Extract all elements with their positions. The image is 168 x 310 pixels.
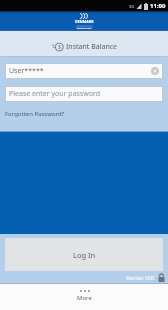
button[interactable]: $ <box>0 31 168 57</box>
staticText: Member FDIC <box>126 275 156 281</box>
staticText: DENMARK <box>75 19 94 24</box>
staticText: STATE BANK <box>77 26 92 29</box>
staticText: More <box>77 294 92 302</box>
staticText: Instant Balance <box>66 42 118 52</box>
staticText: Log In <box>73 250 96 260</box>
staticText: User***** <box>9 66 44 76</box>
staticText: 11:00 <box>150 2 166 10</box>
staticText: $ <box>58 43 62 51</box>
staticText: 3G <box>129 4 135 9</box>
button[interactable]: Log In <box>5 238 163 271</box>
staticText: Please enter your password <box>9 89 101 99</box>
button[interactable]: Please enter your password <box>5 86 163 102</box>
button[interactable]: User***** <box>5 63 163 79</box>
button[interactable]: Forgotten Password? <box>5 110 65 118</box>
button[interactable]: More <box>77 290 92 302</box>
